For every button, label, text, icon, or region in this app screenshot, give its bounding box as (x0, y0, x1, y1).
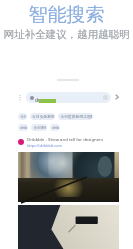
staticText: dribb (20, 125, 27, 130)
staticText: dribb (52, 125, 59, 130)
button[interactable]: More options (18, 92, 22, 103)
staticText: 今日头条新闻 (32, 114, 54, 119)
button[interactable]: Clear (103, 95, 108, 100)
button[interactable]: 今日 (18, 113, 27, 120)
staticText: Dribbble - Show and tell for designers (27, 136, 104, 142)
staticText: https://dribbble.com (27, 143, 62, 148)
staticText: 网址补全建议，越用越聪明 (0, 28, 133, 41)
button[interactable]: dribb (18, 124, 28, 131)
button[interactable]: 今日世界新闻之国际 (58, 113, 93, 120)
button[interactable]: Go (113, 93, 121, 101)
button[interactable]: 今日新闻 (31, 124, 47, 131)
staticText: 今日 (20, 114, 26, 119)
staticText: 今日新闻 (33, 125, 46, 130)
staticText: 今日世界新闻之国际 (60, 114, 92, 119)
staticText: dr (35, 97, 41, 103)
button[interactable]: Dribbble - Show and tell for designers (18, 136, 122, 148)
button[interactable]: dr (26, 92, 111, 103)
staticText: 智能搜索 (0, 3, 133, 27)
button[interactable]: dribb (50, 124, 60, 131)
button[interactable]: 今日头条新闻 (30, 113, 55, 120)
